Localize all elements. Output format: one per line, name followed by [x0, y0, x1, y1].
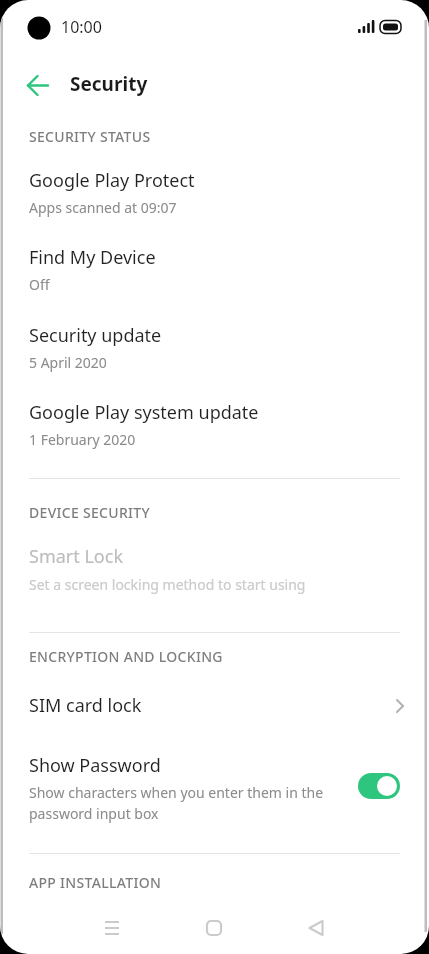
staticText: Apps scanned at 09:07 [29, 198, 177, 217]
button[interactable] [184, 906, 244, 950]
staticText: Off [29, 275, 50, 294]
button[interactable]: Find My Device [0, 236, 429, 308]
staticText: Google Play system update [29, 400, 259, 425]
button[interactable] [14, 66, 58, 110]
staticText: 1 February 2020 [29, 430, 136, 449]
button[interactable]: SIM card lock [0, 684, 429, 730]
staticText: APP INSTALLATION [29, 873, 162, 892]
staticText: ENCRYPTION AND LOCKING [29, 647, 223, 666]
staticText: Find My Device [29, 245, 156, 270]
staticText: Show characters when you enter them in t… [29, 783, 324, 802]
staticText: Security [70, 71, 148, 97]
staticText: 10:00 [61, 16, 102, 38]
button[interactable] [82, 906, 142, 950]
staticText: Set a screen locking method to start usi… [29, 575, 306, 594]
button[interactable]: Security update [0, 314, 429, 386]
staticText: SECURITY STATUS [29, 127, 151, 146]
button[interactable] [286, 906, 346, 950]
button[interactable]: Show Password [0, 749, 429, 833]
staticText: DEVICE SECURITY [29, 503, 150, 522]
staticText: 5 April 2020 [29, 353, 107, 372]
staticText: Smart Lock [29, 544, 123, 569]
staticText: Show Password [29, 753, 161, 778]
button[interactable]: Google Play Protect [0, 159, 429, 231]
staticText: Security update [29, 323, 162, 348]
staticText: SIM card lock [29, 693, 142, 718]
button[interactable]: Smart Lock [0, 537, 429, 609]
staticText: Google Play Protect [29, 168, 195, 193]
button[interactable]: Google Play system update [0, 391, 429, 463]
staticText: password input box [29, 804, 159, 823]
